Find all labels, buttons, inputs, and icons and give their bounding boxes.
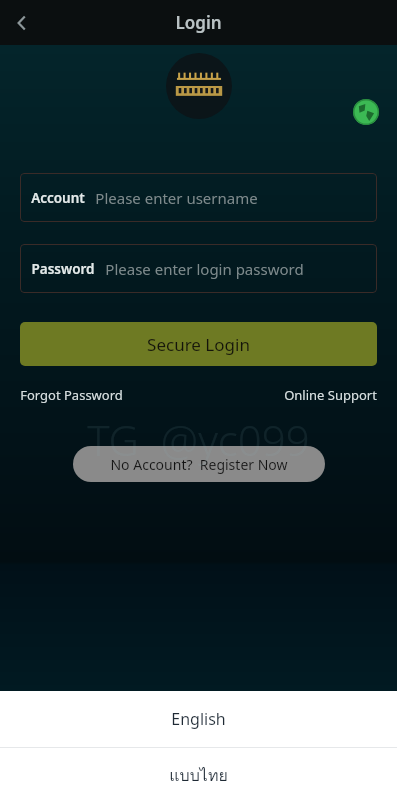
button[interactable]: Forgot Password <box>20 382 123 408</box>
button[interactable]: Online Support <box>284 382 377 408</box>
staticText: Online Support <box>284 386 377 404</box>
staticText: TG @yc099 <box>87 411 310 468</box>
staticText: แบบไทย <box>169 763 228 788</box>
button[interactable]: No Account? Register Now <box>73 446 325 482</box>
staticText: Secure Login <box>147 333 250 356</box>
staticText: No Account? Register Now <box>110 455 288 474</box>
button[interactable]: แบบไทย <box>0 748 397 803</box>
button[interactable]: Secure Login <box>20 322 377 366</box>
button[interactable]: Back <box>0 1 44 45</box>
staticText: Please enter username <box>95 188 258 208</box>
staticText: Password <box>31 260 95 278</box>
staticText: Login <box>175 11 222 34</box>
button[interactable]: Language <box>345 91 387 133</box>
staticText: Account <box>31 189 85 207</box>
staticText: English <box>171 708 226 730</box>
button[interactable]: English <box>0 691 397 747</box>
button[interactable]: Account <box>20 173 377 222</box>
button[interactable]: Password <box>20 244 377 293</box>
staticText: Please enter login password <box>105 259 304 279</box>
staticText: Forgot Password <box>20 386 123 404</box>
